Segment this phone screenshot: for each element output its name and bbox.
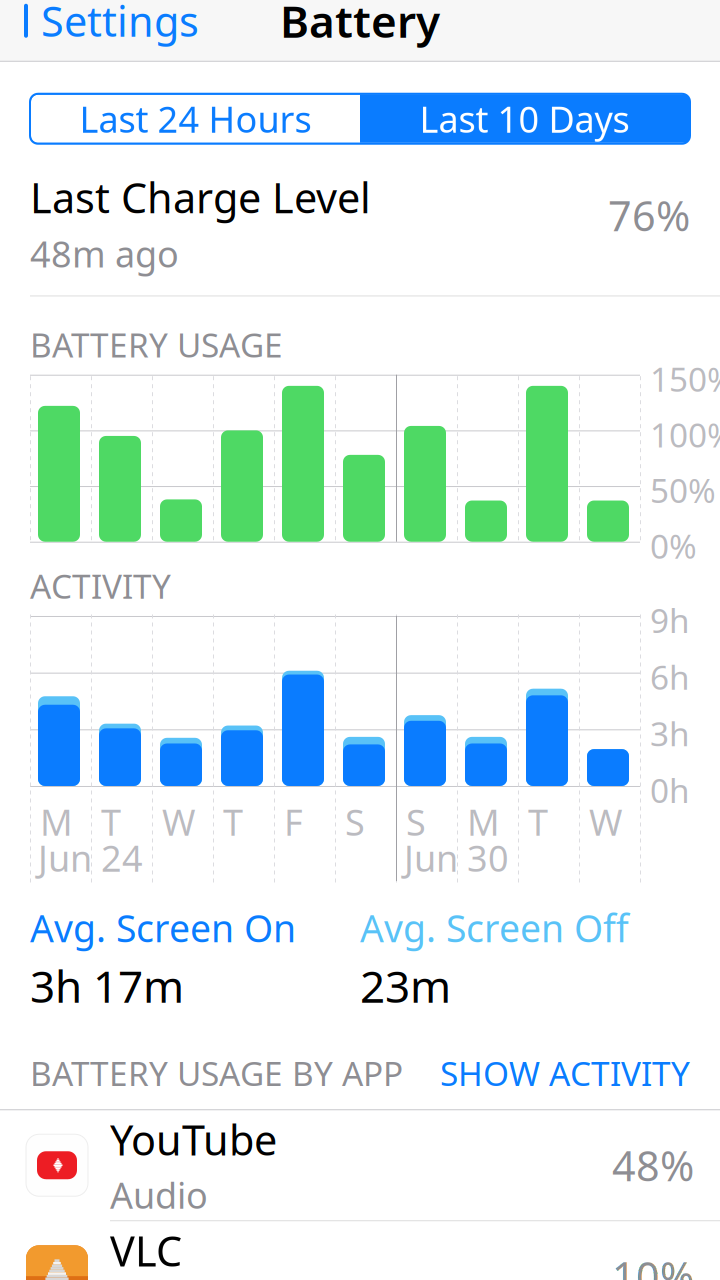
staticText: 10% [612,1249,694,1280]
staticText: Settings [41,0,199,48]
staticText: Jun 30 [404,834,509,882]
staticText: T [528,798,548,846]
staticText: 76% [608,188,690,243]
button[interactable]: YouTube [0,1110,720,1220]
button[interactable]: Settings [0,0,199,56]
staticText: T [223,798,243,846]
staticText: 48% [612,1138,694,1193]
staticText: Battery [280,0,440,50]
button[interactable]: SHOW ACTIVITY [440,1051,690,1095]
staticText: Last 10 Days [419,95,629,143]
staticText: 0% [650,524,697,568]
staticText: Audio [110,1171,208,1219]
staticText: Last Charge Level [30,170,371,225]
staticText: 23m [360,957,451,1015]
staticText: M [467,798,500,846]
staticText: BATTERY USAGE BY APP [30,1051,403,1095]
staticText: M [40,798,73,846]
staticText: 48m ago [30,230,179,277]
staticText: 50% [650,468,716,512]
staticText: 6h [650,655,690,699]
staticText: 3h 17m [30,957,184,1015]
staticText: 9h [650,598,690,642]
staticText: SHOW ACTIVITY [440,1051,690,1095]
staticText: ACTIVITY [30,564,171,608]
staticText: T [101,798,121,846]
button[interactable]: VLC [0,1221,720,1280]
button[interactable]: Last 10 Days [360,95,689,143]
staticText: Last 24 Hours [79,95,311,143]
staticText: BATTERY USAGE [30,322,283,367]
staticText: Avg. Screen On [30,903,296,953]
staticText: S [345,798,365,846]
staticText: Avg. Screen Off [360,903,629,953]
button[interactable]: Last 24 Hours [31,95,360,143]
staticText: 0h [650,768,690,812]
staticText: S [406,798,426,846]
staticText: F [284,798,303,846]
staticText: 150% [650,357,720,401]
staticText: Jun 24 [38,834,143,882]
staticText: W [162,798,195,846]
staticText: W [589,798,622,846]
staticText: YouTube [110,1112,277,1167]
staticText: 3h [650,711,690,756]
staticText: 100% [650,412,720,457]
